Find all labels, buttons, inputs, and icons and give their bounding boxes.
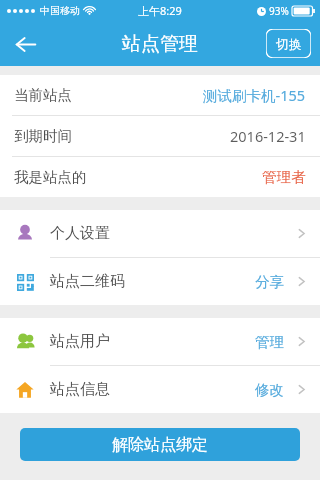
button[interactable]: 站点信息 [0,366,320,413]
staticText: 个人设置 [50,224,110,243]
button[interactable]: 切换 [266,29,311,58]
staticText: 站点用户 [50,332,110,351]
staticText: 站点信息 [50,380,110,399]
staticText: 管理 [255,333,284,351]
button[interactable]: 我是站点的 [0,157,320,197]
staticText: 修改 [255,381,284,399]
button[interactable]: 当前站点 [0,75,320,115]
button[interactable]: 站点用户 [0,318,320,365]
button[interactable]: 站点二维码 [0,258,320,305]
staticText: 当前站点 [14,86,72,104]
staticText: 到期时间 [14,127,72,145]
staticText: 分享 [255,273,284,291]
button[interactable]: 个人设置 [0,210,320,257]
staticText: 2016-12-31 [230,126,306,146]
staticText: 上午8:29 [138,3,182,18]
staticText: 我是站点的 [14,168,87,186]
staticText: 站点二维码 [50,272,125,291]
button[interactable]: Back [6,25,44,63]
staticText: 解除站点绑定 [112,435,208,455]
staticText: 93% [269,4,289,18]
staticText: 测试刷卡机-155 [203,85,306,105]
button[interactable]: 到期时间 [0,116,320,156]
staticText: 中国移动 [40,4,80,17]
staticText: 管理者 [262,168,306,186]
button[interactable]: 解除站点绑定 [20,428,300,461]
staticText: 切换 [276,36,302,52]
staticText: 站点管理 [122,32,198,56]
